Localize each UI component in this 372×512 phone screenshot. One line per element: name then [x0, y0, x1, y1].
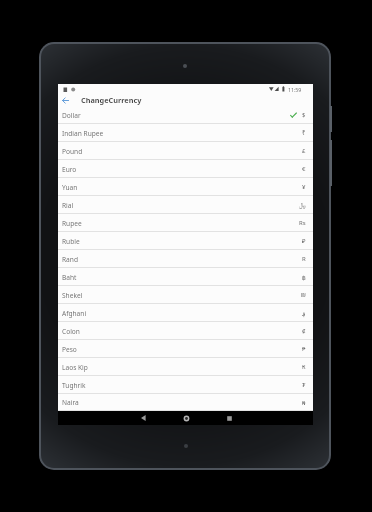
staticText: $ — [302, 111, 306, 119]
staticText: Dollar — [62, 111, 81, 120]
staticText: Laos Kip — [62, 363, 88, 372]
staticText: Rial — [62, 201, 74, 210]
staticText: Rand — [62, 255, 78, 264]
button[interactable]: Baht — [58, 268, 313, 286]
staticText: ₱ — [302, 345, 306, 353]
staticText: ฿ — [302, 274, 306, 281]
staticText: ₽ — [302, 237, 306, 245]
staticText: Naira — [62, 398, 79, 407]
staticText: Peso — [62, 345, 77, 354]
staticText: Colon — [62, 327, 80, 336]
button[interactable] — [219, 411, 239, 425]
button[interactable]: Rupee — [58, 214, 313, 232]
button[interactable]: Ruble — [58, 232, 313, 250]
staticText: Yuan — [62, 183, 78, 192]
staticText: Euro — [62, 165, 77, 174]
button[interactable]: Naira — [58, 394, 313, 411]
button[interactable]: Colon — [58, 322, 313, 340]
button[interactable]: Pound — [58, 142, 313, 160]
staticText: Rs — [299, 219, 306, 227]
staticText: Rupee — [62, 219, 82, 228]
button[interactable] — [176, 411, 196, 425]
staticText: ₹ — [302, 129, 306, 137]
staticText: ChangeCurrency — [81, 95, 142, 105]
button[interactable]: Peso — [58, 340, 313, 358]
button[interactable]: Rial — [58, 196, 313, 214]
staticText: ؋ — [302, 310, 306, 317]
button[interactable] — [133, 411, 153, 425]
staticText: ₭ — [302, 363, 306, 371]
button[interactable]: Yuan — [58, 178, 313, 196]
staticText: Indian Rupee — [62, 129, 104, 138]
staticText: € — [302, 165, 306, 173]
staticText: 11:59 — [288, 86, 302, 93]
button[interactable] — [58, 94, 72, 106]
button[interactable]: Tughrik — [58, 376, 313, 394]
staticText: ₦ — [302, 399, 306, 407]
staticText: Baht — [62, 273, 77, 282]
staticText: £ — [302, 147, 306, 155]
staticText: Shekel — [62, 291, 83, 300]
staticText: ¥ — [302, 183, 306, 191]
button[interactable]: Afghani — [58, 304, 313, 322]
button[interactable]: Euro — [58, 160, 313, 178]
staticText: ﷼ — [299, 202, 306, 208]
staticText: ₡ — [302, 327, 306, 335]
button[interactable]: Indian Rupee — [58, 124, 313, 142]
staticText: Tughrik — [62, 381, 86, 390]
staticText: Ruble — [62, 237, 80, 246]
button[interactable]: Shekel — [58, 286, 313, 304]
staticText: ₪ — [301, 291, 306, 299]
button[interactable]: Rand — [58, 250, 313, 268]
staticText: Pound — [62, 147, 83, 156]
staticText: ₮ — [302, 381, 306, 389]
staticText: R — [302, 255, 306, 263]
button[interactable]: Laos Kip — [58, 358, 313, 376]
staticText: Afghani — [62, 309, 87, 318]
button[interactable]: Dollar — [58, 106, 313, 124]
